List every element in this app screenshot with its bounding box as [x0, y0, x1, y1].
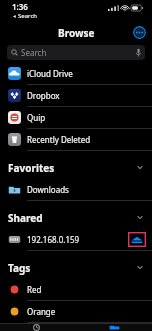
staticText: Quip: [27, 112, 46, 123]
button[interactable]: Downloads: [0, 179, 152, 200]
staticText: 1:36: [12, 1, 28, 12]
button[interactable]: 192.168.0.159: [0, 229, 152, 250]
button[interactable]: Recents: [0, 324, 76, 331]
button[interactable]: iCloud Drive: [0, 63, 152, 84]
button[interactable]: Orange: [0, 301, 152, 322]
button[interactable]: Search: [7, 45, 145, 60]
staticText: Orange: [27, 306, 56, 317]
button[interactable]: Favorites: [0, 157, 152, 179]
staticText: Shared: [8, 211, 43, 225]
staticText: Downloads: [27, 184, 69, 195]
staticText: Red: [27, 284, 42, 295]
staticText: Search: [21, 47, 47, 58]
staticText: iCloud Drive: [27, 68, 73, 79]
button[interactable]: Red: [0, 279, 152, 300]
staticText: Browse: [58, 26, 95, 40]
staticText: Dropbox: [27, 90, 60, 101]
staticText: Search: [18, 12, 37, 20]
staticText: 192.168.0.159: [27, 234, 80, 245]
staticText: Favorites: [8, 161, 55, 175]
button[interactable]: Eject: [128, 232, 146, 247]
button[interactable]: Browse: [76, 324, 152, 331]
staticText: Recently Deleted: [27, 134, 91, 145]
button[interactable]: Recently Deleted: [0, 129, 152, 150]
button[interactable]: Shared: [0, 207, 152, 229]
button[interactable]: Dropbox: [0, 85, 152, 106]
button[interactable]: More options: [133, 26, 146, 39]
staticText: Tags: [8, 261, 31, 275]
button[interactable]: Quip: [0, 107, 152, 128]
button[interactable]: Tags: [0, 257, 152, 279]
